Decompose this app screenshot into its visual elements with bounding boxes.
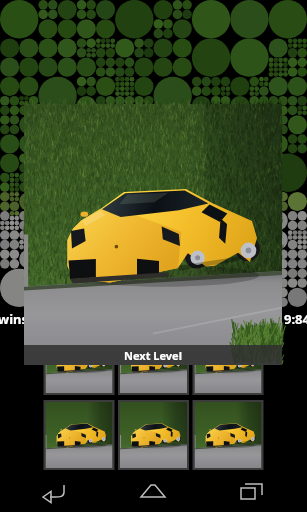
button[interactable]: Recent apps [228, 470, 276, 512]
button[interactable]: Home [129, 470, 177, 512]
button[interactable]: Back [30, 470, 78, 512]
button[interactable]: Next Level [24, 104, 282, 365]
button[interactable]: Next Level [24, 345, 282, 365]
staticText: 9:84 [284, 310, 307, 328]
staticText: wins [0, 310, 28, 328]
staticText: Next Level [124, 348, 182, 363]
